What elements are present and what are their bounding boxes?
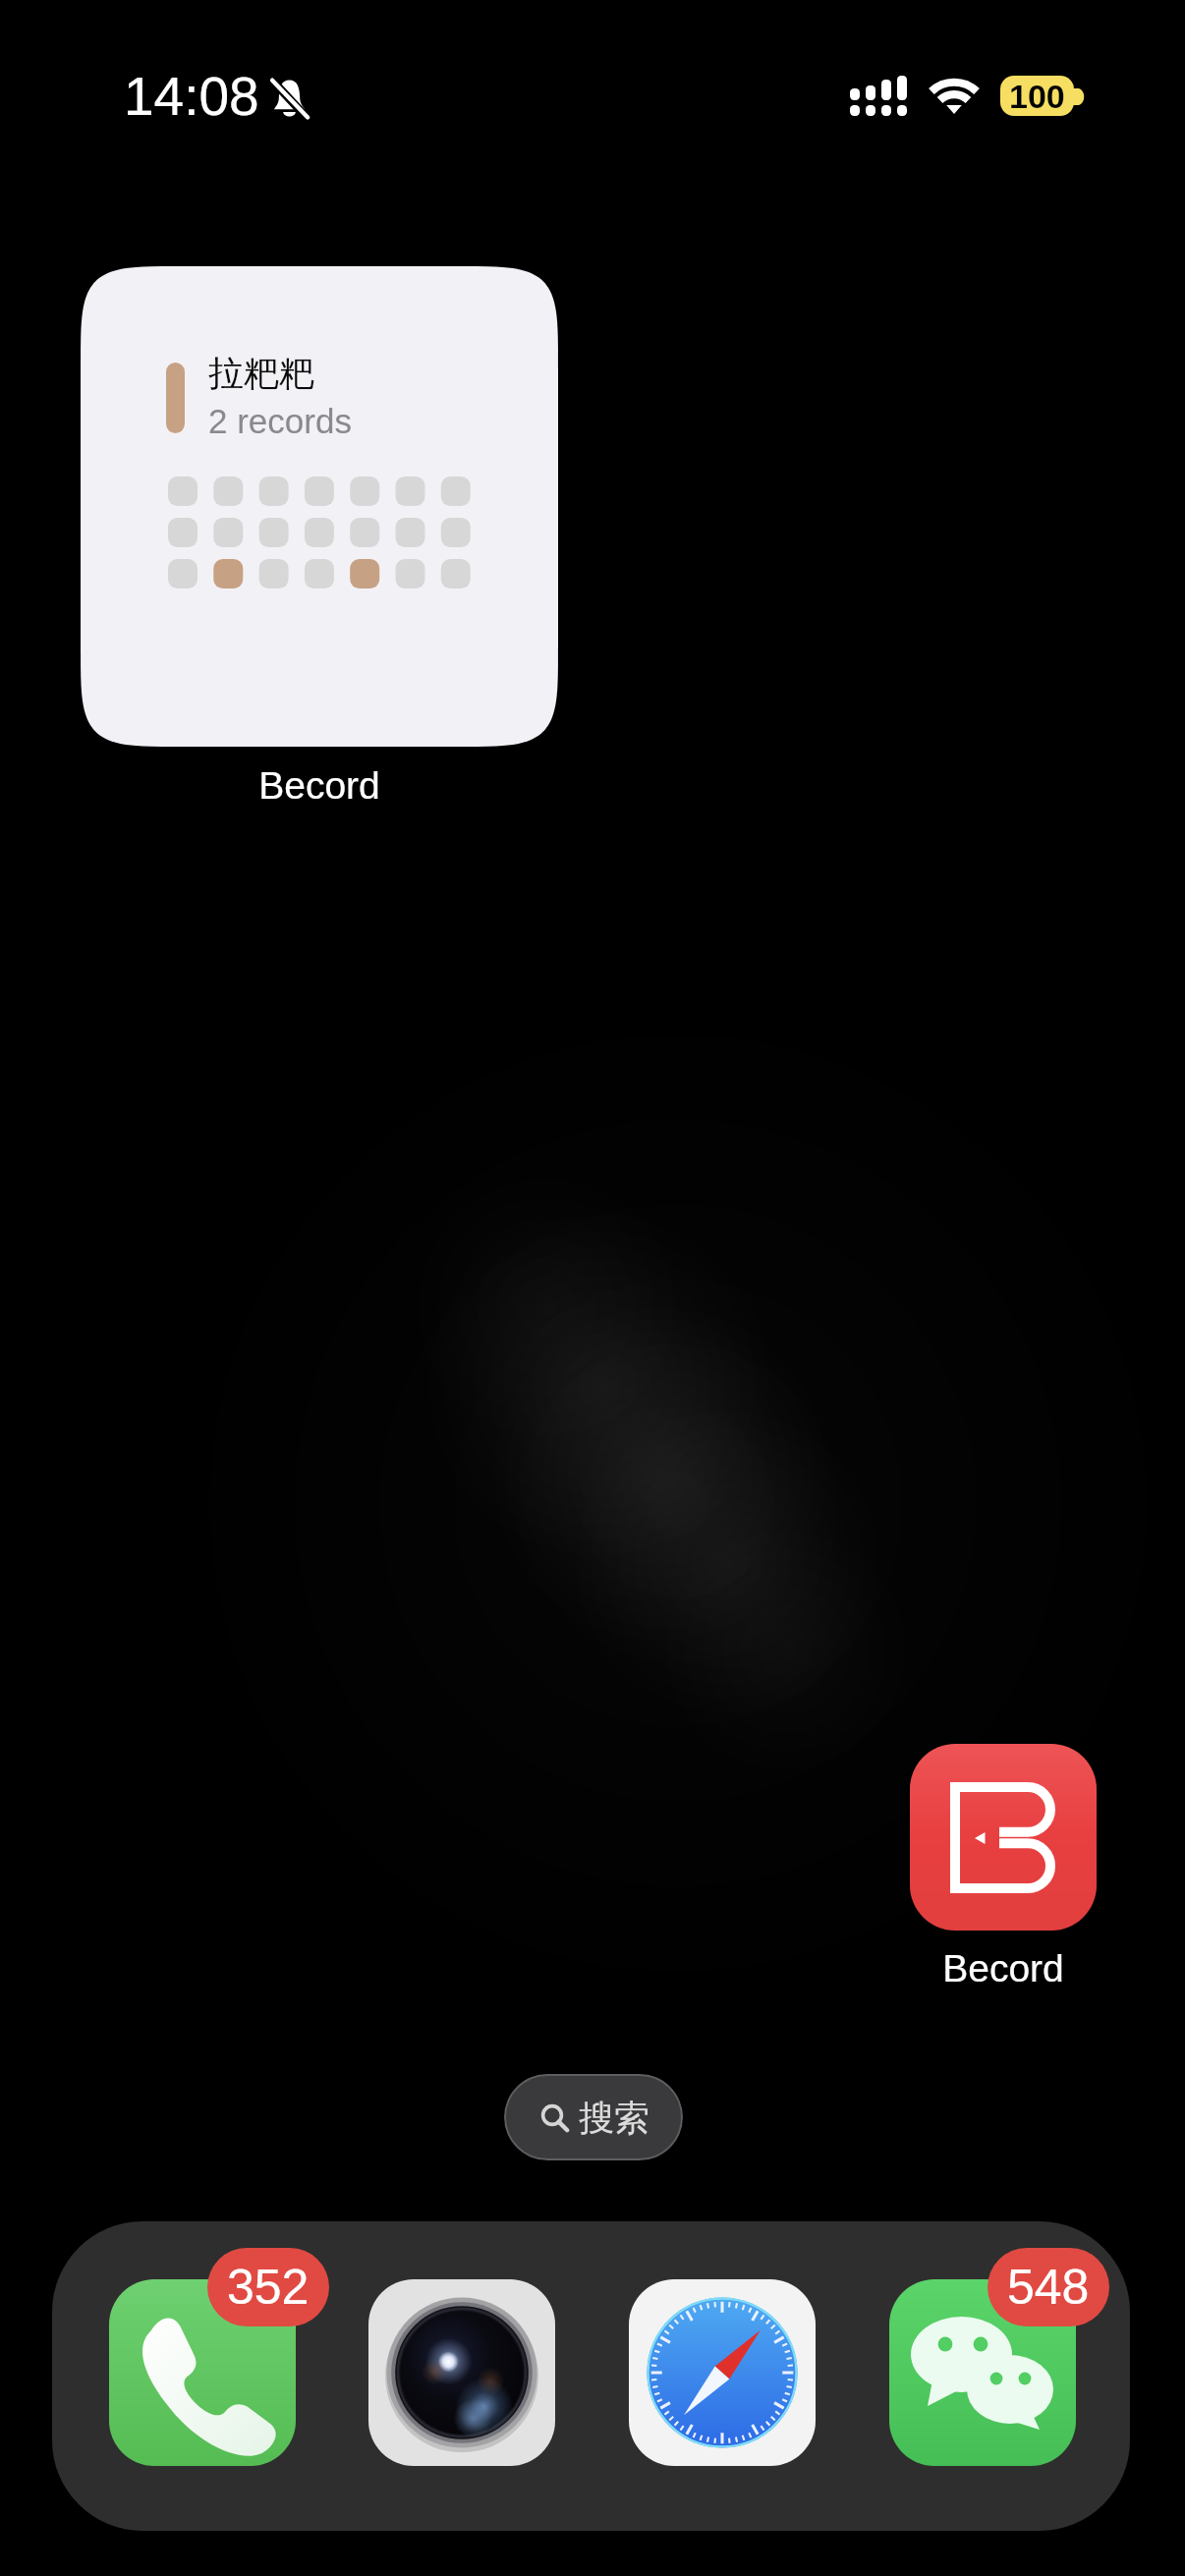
staticText: 2 records bbox=[208, 402, 352, 440]
staticText: 搜索 bbox=[579, 2096, 649, 2140]
staticText: 352 bbox=[227, 2260, 310, 2315]
button[interactable]: Becord widget, 拉粑粑, 2 records bbox=[81, 266, 558, 808]
button[interactable]: Becord app bbox=[882, 1744, 1124, 1990]
button[interactable]: Phone bbox=[109, 2279, 296, 2466]
staticText: 100 bbox=[1009, 78, 1065, 115]
button[interactable]: 搜索 bbox=[504, 2074, 683, 2160]
staticText: 548 bbox=[1007, 2260, 1090, 2315]
staticText: Becord bbox=[258, 764, 380, 808]
button[interactable]: Camera bbox=[368, 2279, 555, 2466]
button[interactable]: Safari bbox=[629, 2279, 816, 2466]
staticText: Becord bbox=[942, 1947, 1064, 1990]
staticText: 14:08 bbox=[124, 66, 259, 126]
staticText: 拉粑粑 bbox=[208, 351, 314, 395]
button[interactable]: WeChat bbox=[889, 2279, 1076, 2466]
